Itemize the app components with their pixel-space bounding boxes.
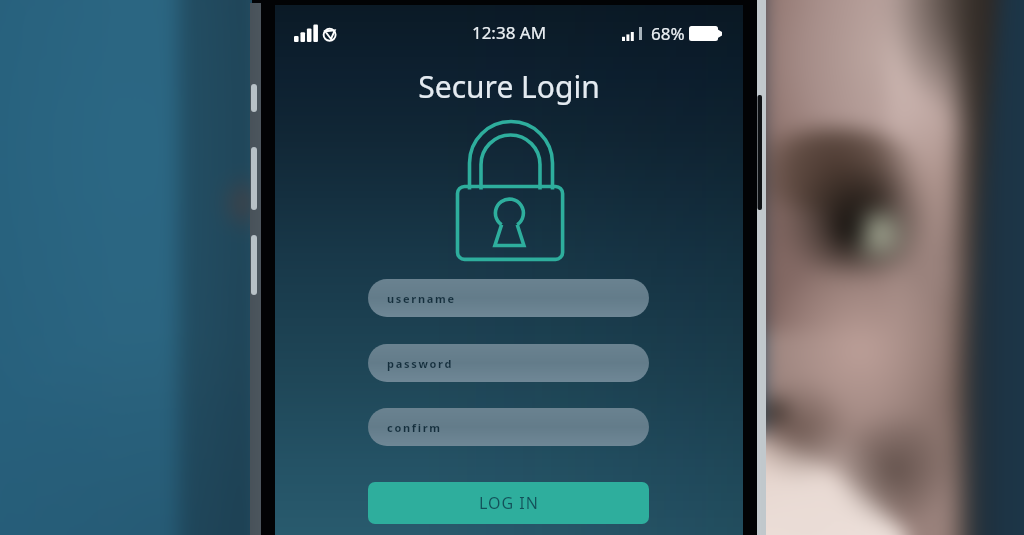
staticText: confirm: [387, 420, 442, 435]
staticText: 12:38 AM: [275, 21, 743, 44]
staticText: username: [387, 291, 456, 306]
staticText: password: [387, 356, 454, 371]
button[interactable]: confirm: [368, 408, 649, 446]
staticText: Secure Login: [275, 66, 743, 107]
staticText: 68%: [651, 22, 685, 45]
button[interactable]: username: [368, 279, 649, 317]
button[interactable]: LOG IN: [368, 482, 649, 524]
other: Secure lock: [455, 118, 567, 266]
staticText: LOG IN: [479, 492, 539, 514]
button[interactable]: password: [368, 344, 649, 382]
